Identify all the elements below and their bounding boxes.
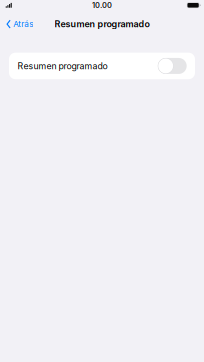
staticText: Atrás <box>13 19 33 29</box>
staticText: 10.00 <box>92 1 112 10</box>
staticText: Resumen programado <box>17 61 107 71</box>
staticText: Resumen programado <box>54 19 149 30</box>
button[interactable]: Resumen programado <box>9 53 195 79</box>
button[interactable]: Atrás <box>0 15 40 33</box>
